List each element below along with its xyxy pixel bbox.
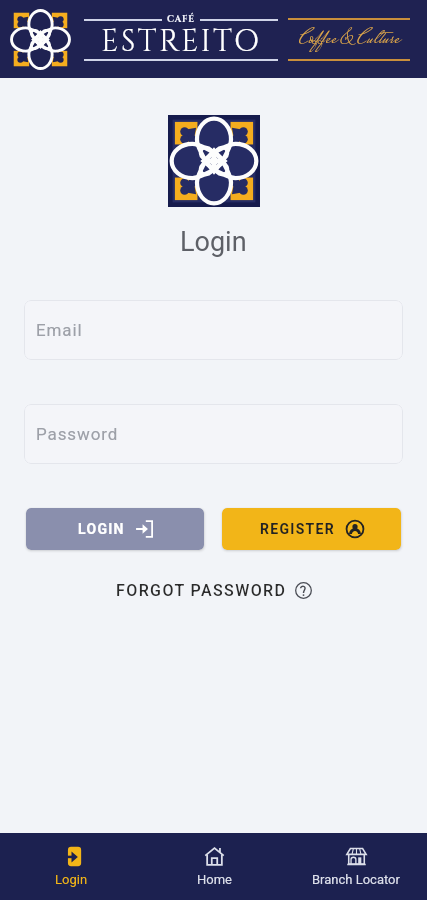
button[interactable]: Cafe Estreito logo bbox=[9, 8, 72, 71]
other: Help bbox=[295, 582, 312, 599]
staticText: Login bbox=[55, 872, 88, 887]
staticText: Password bbox=[36, 424, 119, 444]
staticText: REGISTER bbox=[260, 521, 336, 537]
staticText: Home bbox=[197, 872, 232, 887]
staticText: Login bbox=[180, 226, 247, 258]
staticText: LOGIN bbox=[78, 521, 125, 537]
button[interactable]: FORGOT PASSWORD bbox=[104, 575, 324, 606]
staticText: Coffee & Culture bbox=[299, 23, 400, 57]
staticText: Branch Locator bbox=[312, 872, 400, 887]
button[interactable]: REGISTER bbox=[222, 508, 401, 550]
staticText: Email bbox=[36, 320, 83, 340]
button[interactable]: Password bbox=[24, 404, 403, 464]
button[interactable]: Email bbox=[24, 300, 403, 360]
button[interactable]: Home bbox=[143, 833, 285, 900]
staticText: FORGOT PASSWORD bbox=[116, 581, 287, 600]
staticText: ESTREITO bbox=[101, 22, 262, 62]
button[interactable]: LOGIN bbox=[26, 508, 204, 550]
staticText: CAFÉ bbox=[167, 13, 195, 25]
button[interactable]: Login bbox=[0, 833, 143, 900]
button[interactable]: Branch Locator bbox=[285, 833, 427, 900]
